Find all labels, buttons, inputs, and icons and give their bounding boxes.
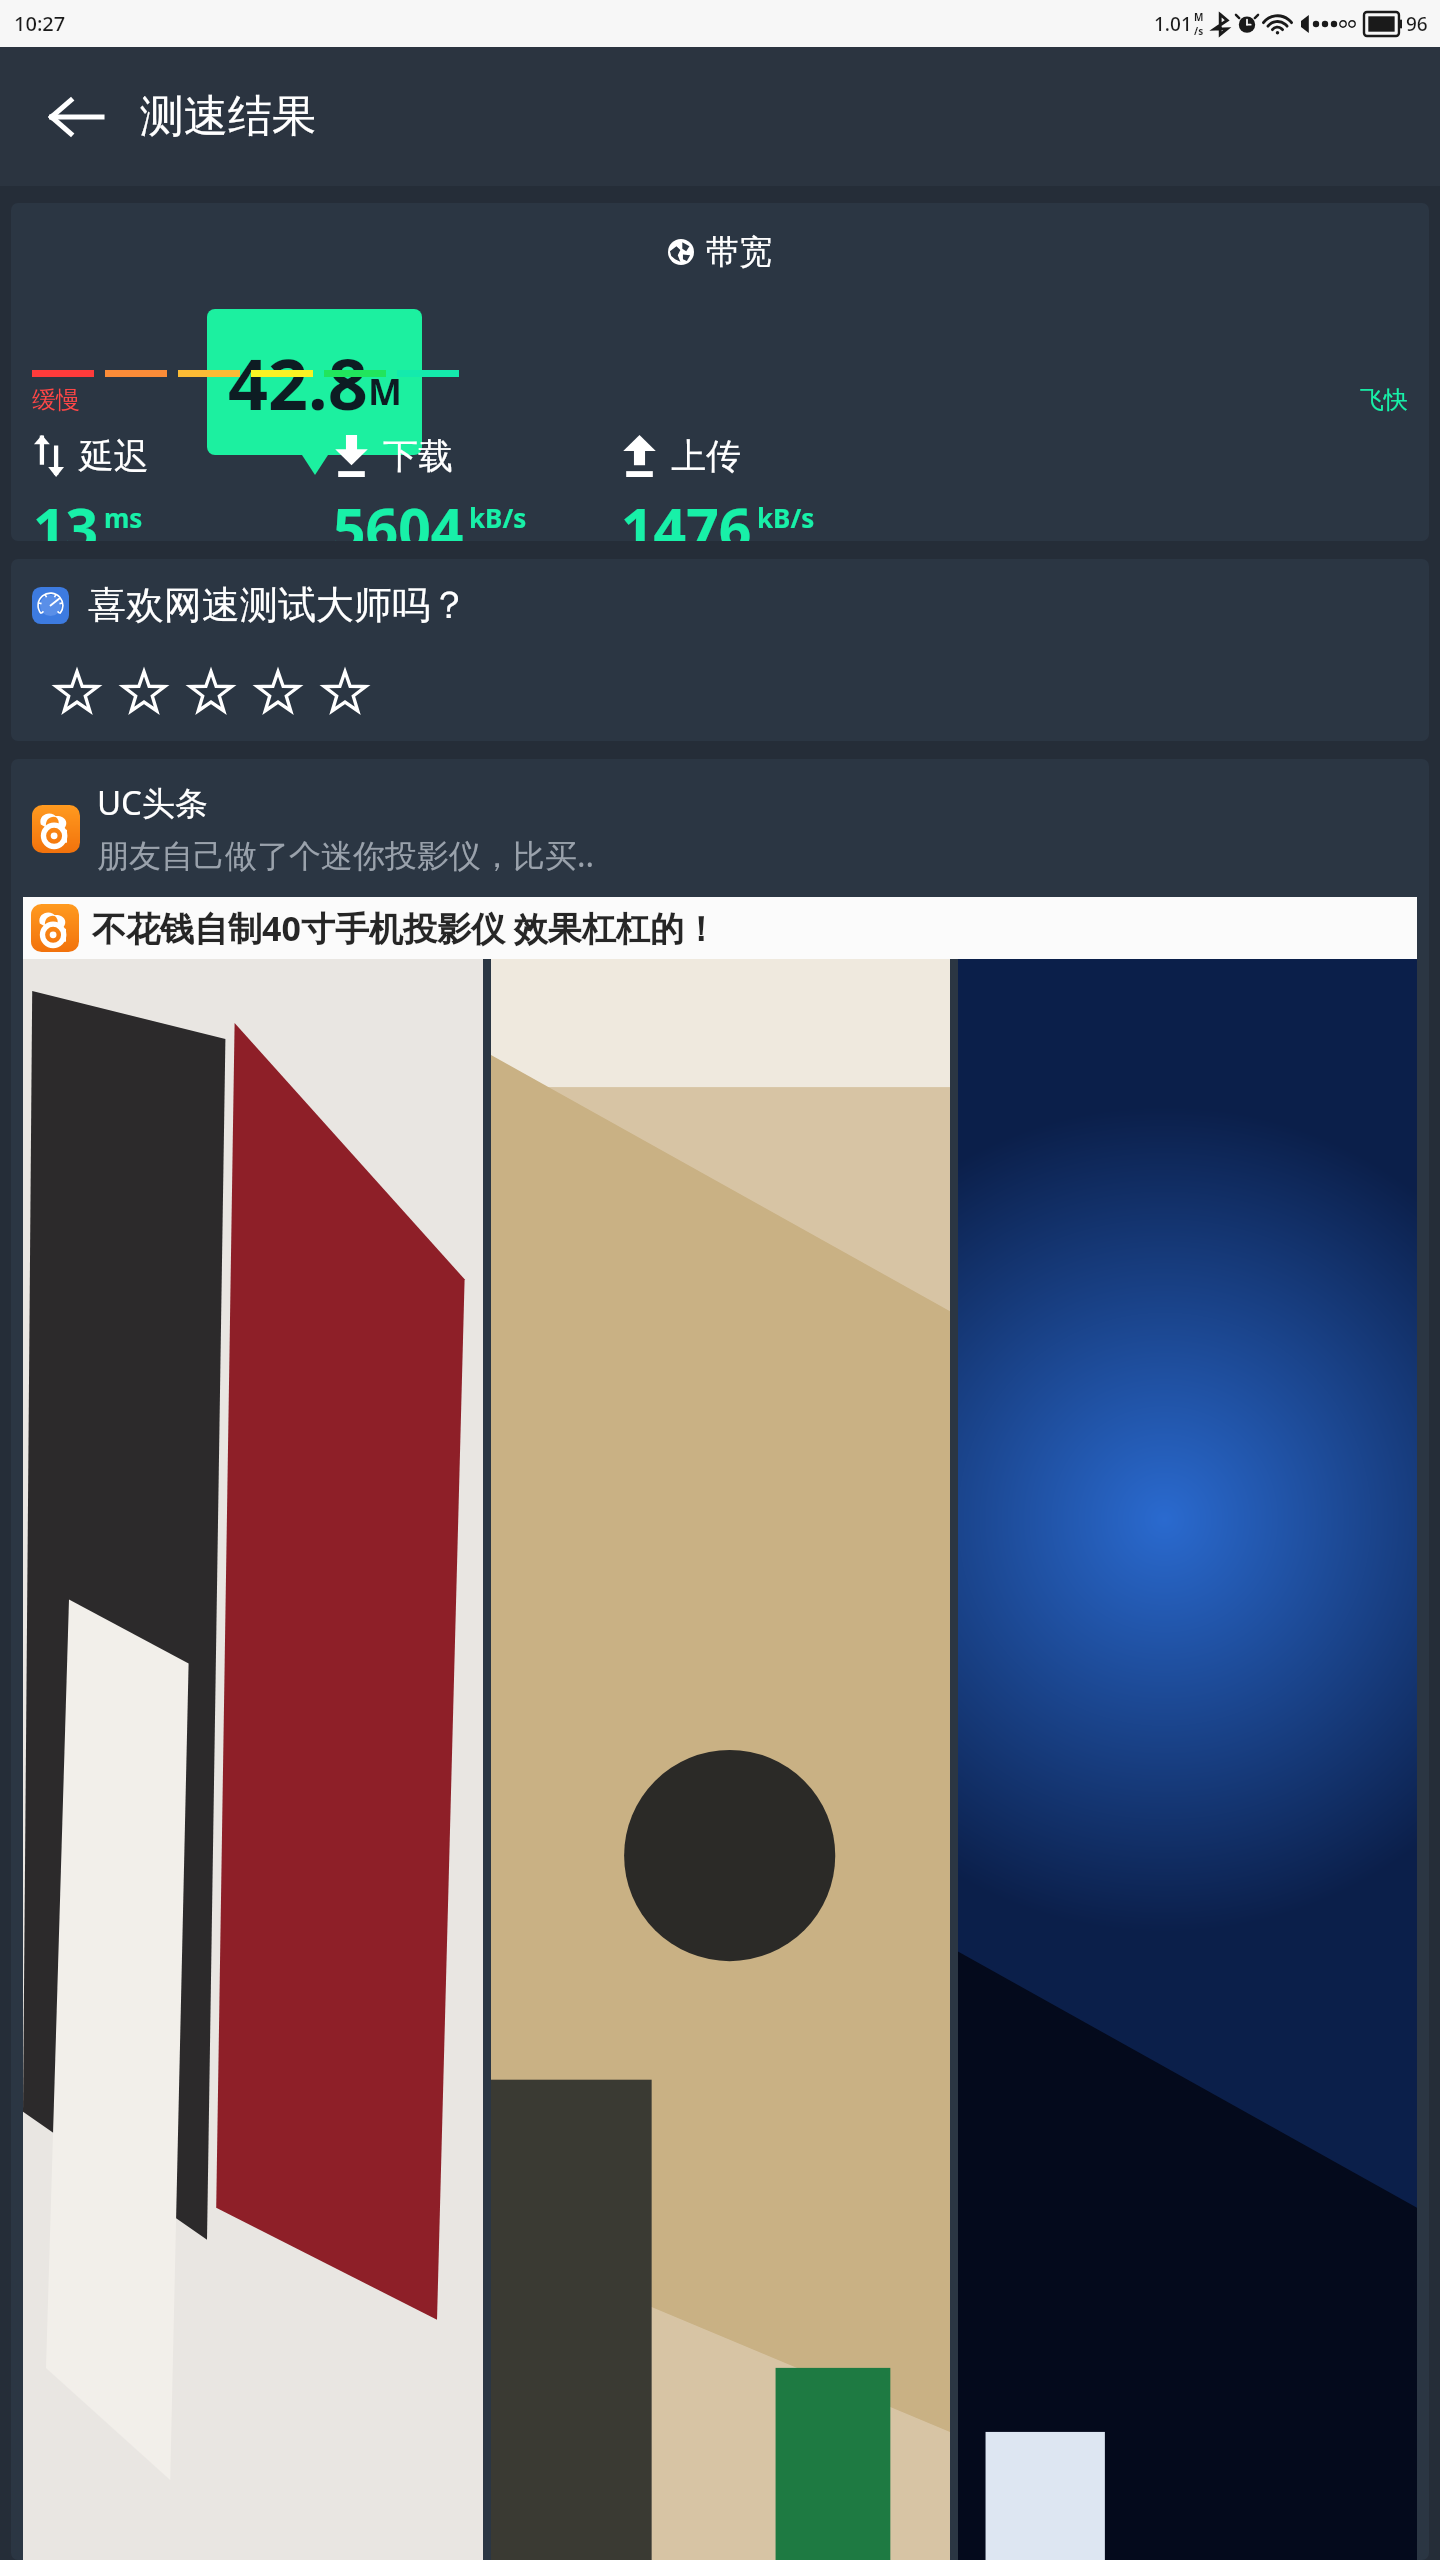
staticText: ms bbox=[104, 500, 143, 535]
staticText: 1476 bbox=[621, 489, 752, 541]
staticText: 下载 bbox=[383, 434, 453, 478]
staticText: 测速结果 bbox=[140, 89, 316, 144]
staticText: 96 bbox=[1406, 11, 1428, 37]
button[interactable]: Rate 4 stars bbox=[255, 669, 301, 715]
button[interactable]: UC头条 bbox=[11, 759, 1429, 2560]
staticText: 带宽 bbox=[706, 231, 772, 273]
staticText: 42.8 bbox=[228, 335, 368, 430]
button[interactable]: Rate 3 stars bbox=[188, 669, 234, 715]
staticText: /s bbox=[1194, 24, 1204, 38]
button[interactable]: Rate 1 stars bbox=[54, 669, 100, 715]
button[interactable]: 下载 bbox=[333, 434, 621, 541]
staticText: 13 bbox=[33, 489, 99, 541]
staticText: kB/s bbox=[757, 500, 815, 535]
staticText: 上传 bbox=[671, 434, 741, 478]
button[interactable]: Rate 2 stars bbox=[121, 669, 167, 715]
button[interactable]: Back bbox=[44, 85, 108, 149]
staticText: 1.01 bbox=[1154, 11, 1192, 37]
staticText: kB/s bbox=[469, 500, 527, 535]
staticText: M bbox=[368, 367, 402, 416]
staticText: 10:27 bbox=[14, 10, 66, 37]
staticText: 5604 bbox=[333, 489, 464, 541]
button[interactable]: Rate 5 stars bbox=[322, 669, 368, 715]
staticText: 不花钱自制40寸手机投影仪 效果杠杠的！ bbox=[92, 905, 718, 951]
staticText: 缓慢 bbox=[32, 385, 80, 415]
button[interactable]: 延迟 bbox=[33, 434, 333, 541]
button[interactable]: 带宽 bbox=[11, 203, 1429, 541]
button[interactable]: 上传 bbox=[621, 434, 921, 541]
staticText: UC头条 bbox=[97, 780, 208, 825]
staticText: M bbox=[1194, 10, 1204, 24]
staticText: 喜欢网速测试大师吗？ bbox=[88, 581, 468, 629]
staticText: 延迟 bbox=[79, 434, 149, 478]
staticText: 朋友自己做了个迷你投影仪，比买.. bbox=[97, 833, 595, 877]
staticText: 飞快 bbox=[1360, 385, 1408, 415]
